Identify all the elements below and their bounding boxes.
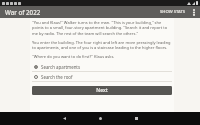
button[interactable]: SHOW STATS <box>158 8 188 16</box>
button[interactable]: Search the roof <box>32 72 172 81</box>
staticText: Next <box>96 87 108 94</box>
staticText: "Where do you want to do first?" Klaus a… <box>32 54 115 59</box>
button[interactable]: More options <box>189 7 198 18</box>
button[interactable]: Recent apps <box>125 112 147 125</box>
button[interactable]: Home <box>89 112 111 125</box>
staticText: SHOW STATS <box>160 9 186 15</box>
staticText: Search apartments <box>41 64 81 70</box>
button[interactable]: Next <box>32 86 172 95</box>
staticText: You enter the building. The four right a… <box>32 40 172 51</box>
staticText: Search the roof <box>41 74 73 80</box>
staticText: War of 2022 <box>5 8 41 16</box>
button[interactable]: Back <box>53 112 75 125</box>
button[interactable]: Search apartments <box>32 62 172 71</box>
staticText: "You and Klaus!" Walker turns to the man… <box>32 20 172 37</box>
